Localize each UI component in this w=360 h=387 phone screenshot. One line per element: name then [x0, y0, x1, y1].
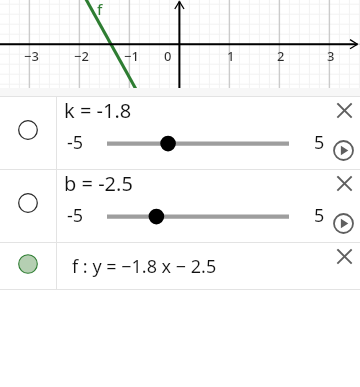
- staticText: -5: [67, 203, 84, 228]
- button[interactable]: Play animation: [327, 207, 359, 239]
- button[interactable]: Delete: [326, 165, 360, 201]
- staticText: f: [97, 0, 103, 19]
- staticText: 0: [164, 47, 172, 65]
- button[interactable]: Delete: [326, 92, 360, 128]
- button[interactable]: Toggle visibility: [10, 246, 46, 282]
- button[interactable]: Toggle visibility: [10, 112, 46, 148]
- button[interactable]: Value slider: [99, 202, 297, 226]
- staticText: 1: [227, 47, 235, 65]
- staticText: k = -1.8: [64, 97, 132, 124]
- button[interactable]: k = -1.8: [57, 97, 326, 125]
- staticText: −1: [124, 47, 139, 65]
- button[interactable]: Value slider: [99, 129, 297, 153]
- button[interactable]: f : y = −1.8 x − 2.5: [57, 243, 326, 289]
- staticText: -5: [67, 130, 84, 155]
- button[interactable]: Delete: [326, 238, 360, 274]
- staticText: 3: [327, 47, 335, 65]
- button[interactable]: Toggle visibility: [10, 185, 46, 221]
- staticText: f : y = −1.8 x − 2.5: [72, 254, 217, 279]
- staticText: 5: [314, 203, 325, 228]
- staticText: b = -2.5: [64, 170, 133, 197]
- staticText: 5: [314, 130, 325, 155]
- staticText: −3: [24, 47, 39, 65]
- staticText: −2: [74, 47, 89, 65]
- button[interactable]: Play animation: [327, 134, 359, 166]
- button[interactable]: b = -2.5: [57, 170, 326, 198]
- staticText: 2: [277, 47, 285, 65]
